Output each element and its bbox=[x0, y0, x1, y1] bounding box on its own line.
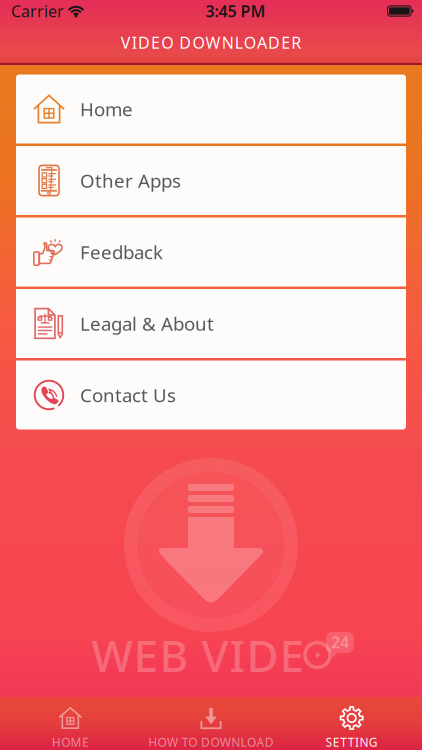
button[interactable]: Feedback bbox=[16, 217, 406, 286]
button[interactable]: HOW TO DOWNLOAD bbox=[141, 697, 281, 750]
staticText: HOW TO DOWNLOAD bbox=[148, 734, 274, 750]
staticText: 24 bbox=[331, 631, 349, 653]
button[interactable]: Contact Us bbox=[16, 360, 406, 429]
staticText: WEB VIDE bbox=[91, 626, 304, 684]
button[interactable]: Other Apps bbox=[16, 146, 406, 215]
staticText: Carrier bbox=[11, 0, 64, 22]
button[interactable]: Home bbox=[16, 74, 406, 143]
staticText: Contact Us bbox=[80, 383, 176, 407]
staticText: 3:45 PM bbox=[205, 0, 265, 22]
staticText: Home bbox=[80, 97, 133, 121]
staticText: VIDEO DOWNLOADER bbox=[121, 32, 301, 53]
staticText: Leagal & About bbox=[80, 311, 214, 336]
button[interactable]: HOME bbox=[0, 697, 141, 750]
staticText: HOME bbox=[52, 734, 89, 750]
staticText: Other Apps bbox=[80, 168, 181, 193]
button[interactable]: SETTING bbox=[281, 697, 422, 750]
staticText: SETTING bbox=[325, 734, 378, 750]
button[interactable]: Leagal & About bbox=[16, 289, 406, 358]
staticText: Feedback bbox=[80, 240, 163, 264]
